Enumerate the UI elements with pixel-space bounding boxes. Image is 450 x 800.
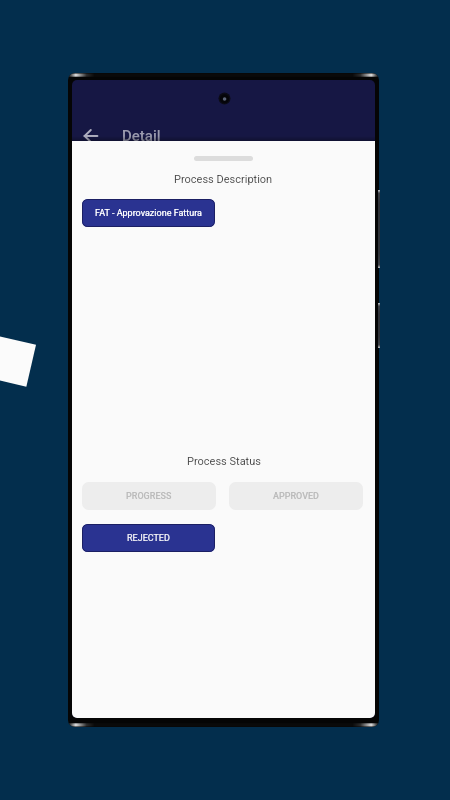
button[interactable]: PROGRESS: [82, 482, 216, 510]
staticText: APPROVED: [273, 491, 319, 502]
staticText: Process Description: [174, 173, 273, 186]
button[interactable]: APPROVED: [229, 482, 363, 510]
staticText: FAT - Approvazione Fattura: [95, 208, 202, 219]
staticText: PROGRESS: [126, 491, 172, 502]
button[interactable]: REJECTED: [82, 524, 215, 552]
button[interactable]: FAT - Approvazione Fattura: [82, 199, 215, 227]
staticText: Process Status: [187, 455, 261, 468]
staticText: Detail: [122, 127, 161, 145]
button[interactable]: Back: [79, 125, 103, 147]
staticText: REJECTED: [127, 533, 170, 544]
